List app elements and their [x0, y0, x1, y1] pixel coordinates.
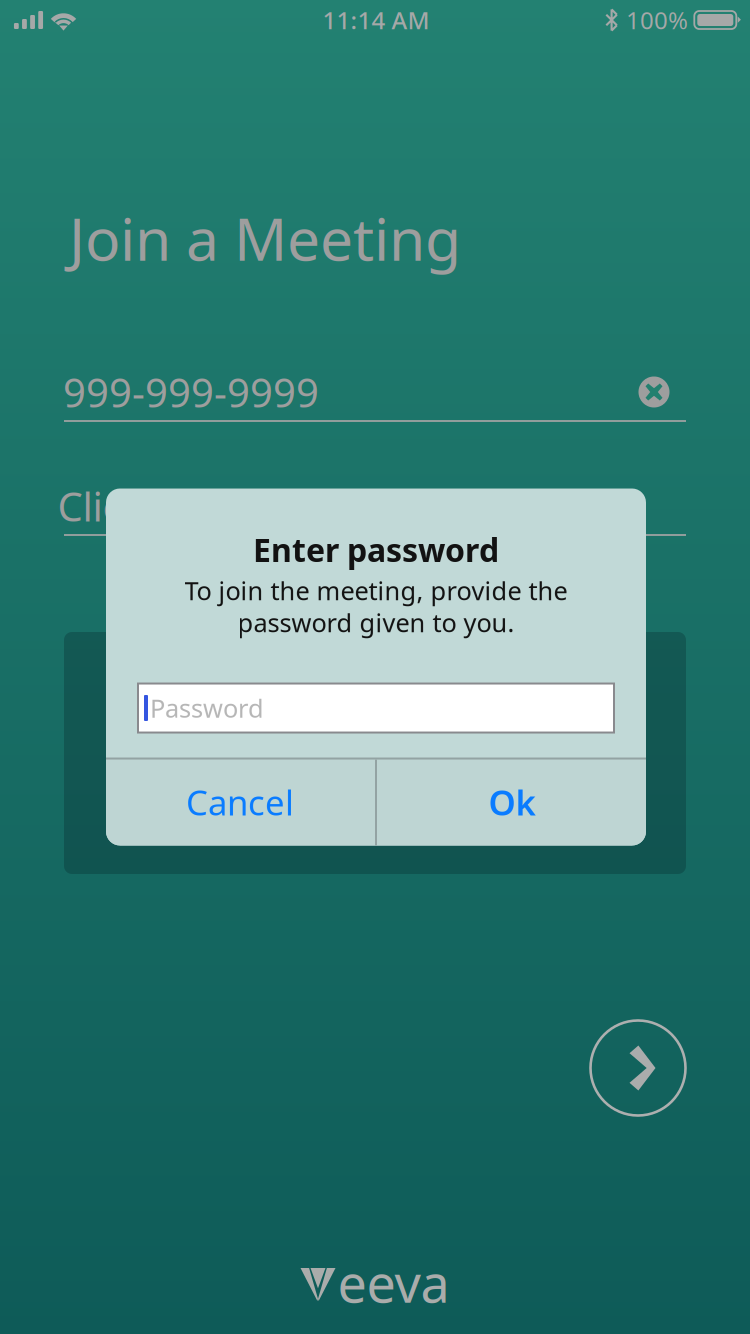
staticText: Join a Meeting — [69, 199, 461, 277]
staticText: Enter password — [253, 528, 499, 571]
button[interactable]: Cancel — [106, 758, 374, 845]
staticText: Client — [57, 479, 164, 532]
staticText: Password — [150, 691, 264, 725]
staticText: 11:14 AM — [322, 4, 429, 36]
button[interactable]: Ok — [378, 758, 646, 845]
staticText: password given to you. — [237, 606, 514, 639]
staticText: To join the meeting, provide the — [184, 574, 567, 607]
staticText: Ok — [488, 779, 535, 825]
staticText: 999-999-9999 — [63, 365, 319, 418]
staticText: eeva — [337, 1248, 449, 1317]
staticText: 100% — [626, 4, 688, 36]
button[interactable]: Clear text — [638, 376, 669, 407]
button[interactable]: Continue — [588, 1018, 688, 1118]
staticText: Cancel — [186, 779, 294, 825]
